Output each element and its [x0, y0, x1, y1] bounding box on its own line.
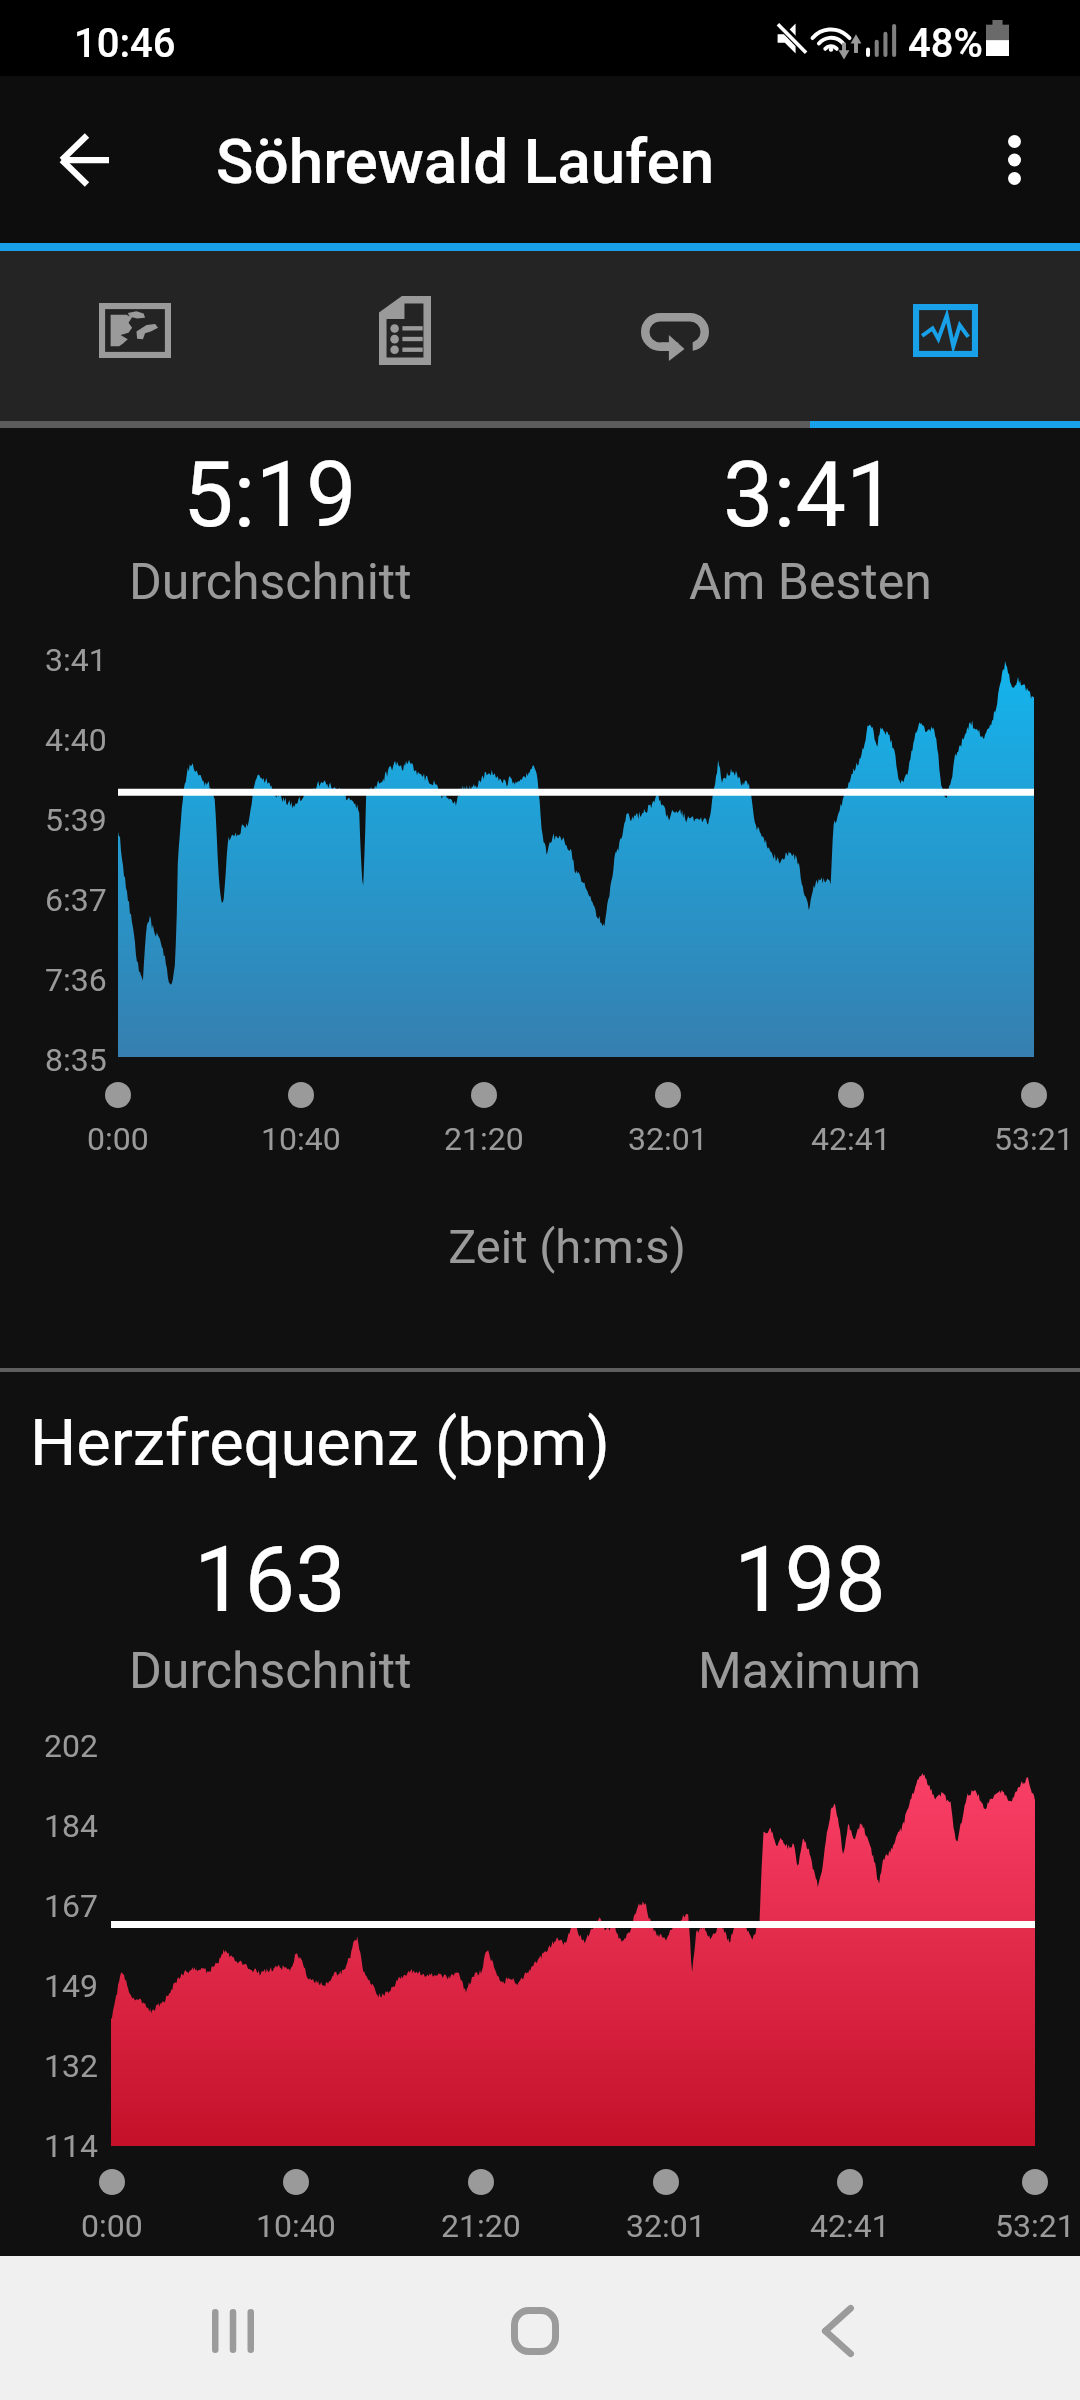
staticText: 6:37 [45, 881, 107, 919]
staticText: 184 [44, 1807, 98, 1845]
staticText: 7:36 [45, 961, 107, 999]
staticText: 10:40 [261, 1120, 341, 1158]
staticText: 5:19 [183, 443, 357, 548]
staticText: 202 [44, 1727, 98, 1765]
button[interactable]: Laps [540, 251, 810, 410]
staticText: 114 [44, 2127, 98, 2165]
staticText: 48% [908, 20, 983, 67]
staticText: 167 [44, 1887, 98, 1925]
staticText: 53:21 [995, 2207, 1075, 2245]
staticText: Maximum [698, 1642, 922, 1701]
staticText: 3:41 [45, 641, 107, 679]
staticText: 10:46 [74, 20, 176, 67]
staticText: 53:21 [994, 1120, 1074, 1158]
staticText: Durchschnitt [129, 553, 412, 612]
button[interactable]: Map [0, 251, 270, 410]
staticText: Zeit (h:m:s) [367, 1219, 767, 1274]
staticText: 149 [44, 1967, 98, 2005]
staticText: 0:00 [81, 2207, 143, 2245]
staticText: 3:41 [723, 443, 897, 548]
staticText: 132 [44, 2047, 98, 2085]
button[interactable]: Recent apps [173, 2271, 293, 2391]
button[interactable]: Details [270, 251, 540, 410]
staticText: 198 [734, 1528, 886, 1633]
button[interactable]: More options [964, 110, 1064, 210]
staticText: 21:20 [441, 2207, 521, 2245]
button[interactable]: Back [34, 110, 134, 210]
staticText: 42:41 [810, 2207, 890, 2245]
staticText: Herzfrequenz (bpm) [30, 1405, 610, 1481]
staticText: 32:01 [626, 2207, 706, 2245]
button[interactable]: Graphs [810, 251, 1080, 410]
staticText: 4:40 [45, 721, 107, 759]
staticText: 163 [194, 1528, 346, 1633]
staticText: Am Besten [689, 553, 932, 612]
staticText: 21:20 [444, 1120, 524, 1158]
staticText: 5:39 [45, 801, 107, 839]
staticText: Durchschnitt [129, 1642, 412, 1701]
button[interactable]: Back [778, 2271, 898, 2391]
staticText: Söhrewald Laufen [216, 125, 715, 198]
staticText: 32:01 [628, 1120, 708, 1158]
staticText: 42:41 [811, 1120, 891, 1158]
button[interactable]: Home [475, 2271, 595, 2391]
staticText: 10:40 [256, 2207, 336, 2245]
staticText: 0:00 [87, 1120, 149, 1158]
staticText: 8:35 [45, 1041, 107, 1079]
